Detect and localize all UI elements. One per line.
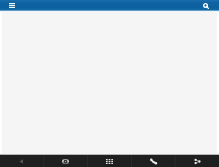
button[interactable]: Search (199, 0, 212, 11)
button[interactable]: All apps (87, 155, 131, 167)
button[interactable]: Open navigation menu (5, 0, 18, 11)
button[interactable]: Messages (43, 155, 87, 167)
button[interactable]: Share (175, 155, 219, 167)
button[interactable]: Phone (131, 155, 175, 167)
button[interactable]: Back (0, 155, 43, 167)
